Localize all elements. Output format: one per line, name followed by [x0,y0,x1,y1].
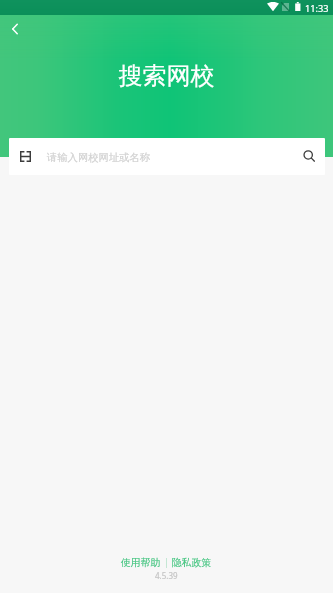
button[interactable]: Scan QR code [20,138,48,174]
staticText: 4.5.39 [155,570,178,581]
staticText: 搜索网校 [0,61,333,91]
button[interactable]: Search [295,138,323,174]
button[interactable]: 使用帮助 [116,555,166,571]
button[interactable]: 隐私政策 [167,555,217,571]
staticText: 请输入网校网址或名称 [47,151,150,164]
button[interactable]: Back [2,16,28,42]
staticText: 11:33 [305,2,329,15]
